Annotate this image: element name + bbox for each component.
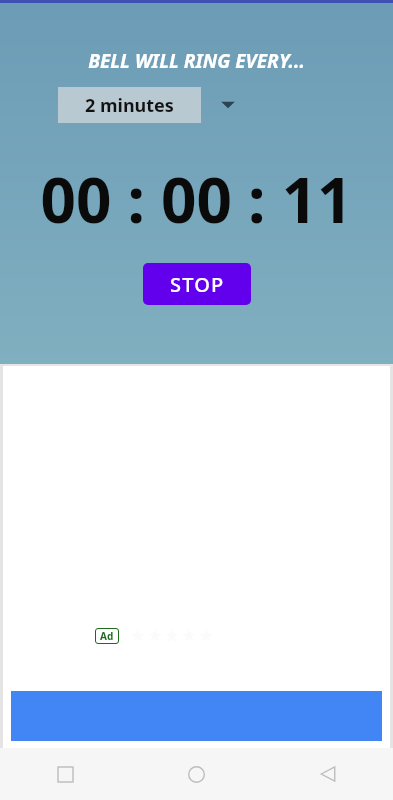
staticText: 00 : 00 : 11 (40, 157, 353, 241)
button[interactable]: Recent apps (0, 748, 131, 800)
button[interactable]: Home (131, 748, 262, 800)
button[interactable]: STOP (143, 263, 251, 305)
staticText: Ad (100, 629, 114, 643)
button[interactable]: Back (262, 748, 393, 800)
button[interactable]: 2 minutes (0, 87, 393, 123)
staticText: 2 minutes (85, 93, 174, 118)
staticText: STOP (170, 271, 225, 298)
staticText: BELL WILL RING EVERY... (88, 48, 305, 74)
other: Open interval dropdown (217, 94, 239, 116)
button[interactable]: Ad (95, 628, 119, 644)
